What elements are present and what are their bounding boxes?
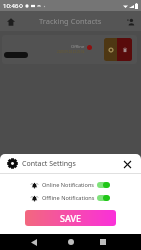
staticText: 2020-09-02 22:25:04 [57, 50, 85, 54]
staticText: SAVE [60, 212, 82, 224]
button[interactable]: Add contact [123, 14, 138, 29]
staticText: Offline [71, 44, 85, 50]
button[interactable]: Contact Settings [7, 158, 76, 169]
button[interactable]: Home [3, 14, 18, 29]
button[interactable]: SAVE [25, 210, 116, 226]
button[interactable]: Delete [117, 38, 132, 61]
button[interactable]: Offline [2, 35, 137, 64]
staticText: 10:46 [3, 2, 19, 10]
button[interactable]: Online Notifications [0, 180, 141, 190]
staticText: Tracking Contacts [39, 16, 102, 26]
button[interactable]: Home [64, 235, 78, 249]
staticText: Online Notifications [42, 181, 95, 189]
button[interactable]: Back [27, 235, 41, 249]
staticText: Offline Notifications [42, 194, 95, 202]
button[interactable]: Recents [96, 235, 110, 249]
button[interactable]: Close [121, 158, 133, 170]
button[interactable]: Offline Notifications [0, 193, 141, 203]
button[interactable]: Settings [104, 38, 117, 61]
staticText: Contact Settings [22, 159, 76, 169]
